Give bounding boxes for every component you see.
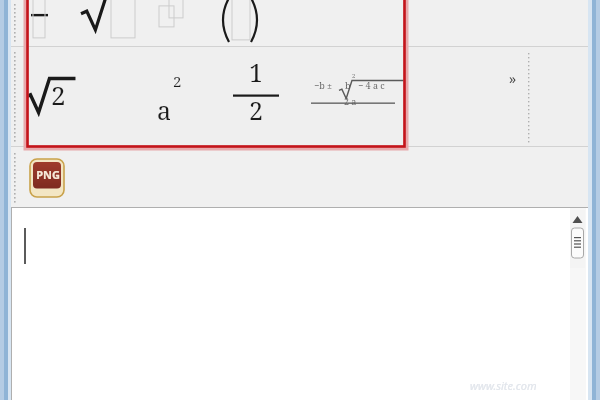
staticText: PNG <box>36 167 60 182</box>
staticText: 1 <box>249 55 263 89</box>
staticText: 2 <box>352 72 356 80</box>
staticText: 2 <box>249 93 263 127</box>
button[interactable]: Scroll <box>570 210 585 268</box>
staticText: −b ± <box>314 79 333 91</box>
staticText: 2 <box>173 71 182 91</box>
staticText: 2 a <box>344 95 357 107</box>
staticText: www.site.com <box>470 378 537 393</box>
staticText: a <box>157 93 172 127</box>
button[interactable]: Export as PNG <box>28 157 68 201</box>
staticText: − 4 a c <box>358 79 385 91</box>
staticText: » <box>509 69 517 88</box>
button[interactable]: Equation gallery highlight <box>26 0 406 148</box>
staticText: 2 <box>51 77 66 112</box>
staticText: b <box>345 79 351 91</box>
